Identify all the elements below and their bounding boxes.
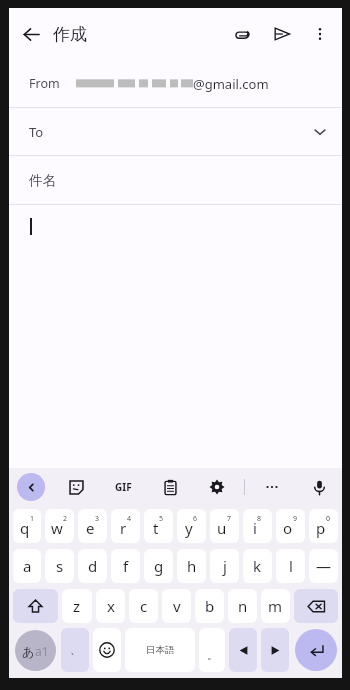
button[interactable]: p bbox=[309, 509, 338, 543]
button[interactable]: Collapse toolbar bbox=[17, 473, 45, 501]
staticText: 日本語 bbox=[146, 644, 175, 656]
staticText: d bbox=[88, 556, 98, 576]
staticText: k bbox=[253, 556, 262, 576]
button[interactable]: u bbox=[210, 509, 239, 543]
staticText: c bbox=[140, 596, 148, 616]
staticText: f bbox=[123, 556, 129, 576]
staticText: 0 bbox=[326, 514, 331, 524]
button[interactable]: Stickers bbox=[61, 472, 91, 502]
staticText: 作成 bbox=[53, 24, 87, 45]
staticText: z bbox=[73, 596, 81, 616]
staticText: a1 bbox=[35, 643, 49, 659]
button[interactable]: Settings bbox=[202, 472, 232, 502]
button[interactable]: n bbox=[228, 589, 257, 623]
button[interactable]: k bbox=[243, 549, 272, 583]
button[interactable]: h bbox=[177, 549, 206, 583]
button[interactable]: j bbox=[210, 549, 239, 583]
button[interactable]: g bbox=[144, 549, 173, 583]
staticText: 8 bbox=[257, 514, 262, 524]
button[interactable]: z bbox=[62, 589, 92, 623]
staticText: 5 bbox=[159, 514, 164, 524]
staticText: あ bbox=[22, 644, 35, 659]
staticText: p bbox=[316, 518, 326, 538]
staticText: h bbox=[187, 556, 197, 576]
button[interactable]: Send bbox=[262, 14, 302, 54]
button[interactable]: From bbox=[9, 60, 342, 107]
staticText: w bbox=[51, 518, 63, 538]
button[interactable]: t bbox=[144, 509, 173, 543]
staticText: y bbox=[185, 518, 193, 538]
staticText: s bbox=[56, 556, 64, 576]
button[interactable]: w bbox=[45, 509, 74, 543]
button[interactable]: d bbox=[78, 549, 107, 583]
staticText: From bbox=[29, 75, 60, 92]
staticText: m bbox=[268, 596, 283, 616]
button[interactable]: m bbox=[261, 589, 290, 623]
button[interactable]: 件名 bbox=[9, 156, 342, 204]
button[interactable]: f bbox=[111, 549, 140, 583]
staticText: r bbox=[120, 518, 127, 538]
button[interactable]: v bbox=[162, 589, 191, 623]
staticText: t bbox=[153, 518, 159, 538]
staticText: 4 bbox=[127, 514, 132, 524]
button[interactable]: 日本語 bbox=[125, 628, 195, 672]
button[interactable]: Backspace bbox=[294, 589, 338, 623]
staticText: @gmail.com bbox=[193, 75, 269, 93]
staticText: u bbox=[217, 518, 227, 538]
staticText: GIF bbox=[115, 480, 132, 494]
staticText: 7 bbox=[227, 514, 232, 524]
button[interactable]: l bbox=[276, 549, 305, 583]
button[interactable]: Move cursor left bbox=[229, 628, 257, 672]
button[interactable]: 、 bbox=[61, 628, 89, 672]
button[interactable]: Shift bbox=[13, 589, 58, 623]
button[interactable]: b bbox=[195, 589, 224, 623]
staticText: 。 bbox=[207, 648, 218, 662]
staticText: 件名 bbox=[29, 172, 56, 189]
staticText: x bbox=[107, 596, 115, 616]
staticText: — bbox=[316, 556, 332, 576]
button[interactable]: o bbox=[276, 509, 305, 543]
staticText: o bbox=[283, 518, 293, 538]
staticText: g bbox=[154, 556, 164, 576]
staticText: 6 bbox=[193, 514, 198, 524]
button[interactable]: r bbox=[111, 509, 140, 543]
button[interactable]: Attach file bbox=[222, 14, 262, 54]
staticText: 3 bbox=[95, 514, 100, 524]
staticText: i bbox=[253, 518, 257, 538]
button[interactable]: a bbox=[13, 549, 41, 583]
button[interactable]: Move cursor right bbox=[261, 628, 289, 672]
staticText: q bbox=[20, 518, 30, 538]
button[interactable]: e bbox=[78, 509, 107, 543]
staticText: a bbox=[23, 556, 32, 576]
staticText: 、 bbox=[70, 643, 81, 657]
button[interactable]: GIF bbox=[108, 472, 138, 502]
button[interactable]: x bbox=[96, 589, 125, 623]
staticText: n bbox=[238, 596, 248, 616]
button[interactable]: s bbox=[45, 549, 74, 583]
button[interactable] bbox=[9, 205, 342, 468]
button[interactable]: More options bbox=[302, 16, 338, 52]
staticText: 1 bbox=[30, 514, 35, 524]
button[interactable]: To bbox=[9, 108, 342, 155]
staticText: v bbox=[173, 596, 181, 616]
button[interactable]: Switch input mode bbox=[15, 630, 56, 671]
button[interactable]: Back bbox=[9, 12, 53, 56]
button[interactable]: q bbox=[13, 509, 41, 543]
button[interactable]: Enter bbox=[295, 629, 337, 671]
staticText: j bbox=[223, 556, 227, 576]
button[interactable]: More bbox=[257, 472, 287, 502]
staticText: 9 bbox=[293, 514, 298, 524]
button[interactable]: Clipboard bbox=[155, 472, 185, 502]
button[interactable]: 。 bbox=[199, 628, 225, 672]
button[interactable]: c bbox=[129, 589, 158, 623]
staticText: b bbox=[205, 596, 215, 616]
staticText: e bbox=[86, 518, 95, 538]
button[interactable]: — bbox=[309, 549, 338, 583]
button[interactable]: Voice input bbox=[304, 472, 334, 502]
button[interactable]: Emoji bbox=[93, 628, 121, 672]
staticText: l bbox=[289, 556, 293, 576]
staticText: 2 bbox=[63, 514, 68, 524]
button[interactable]: i bbox=[243, 509, 272, 543]
staticText: To bbox=[29, 123, 44, 141]
button[interactable]: y bbox=[177, 509, 206, 543]
